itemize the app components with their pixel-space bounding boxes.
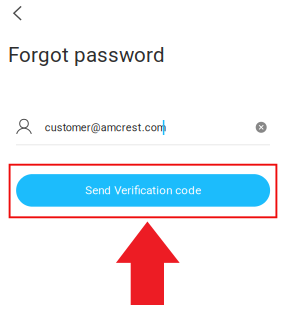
staticText: customer@amcrest.com	[45, 121, 166, 134]
button[interactable]: Clear text	[251, 117, 271, 137]
staticText: Forgot password	[8, 43, 165, 67]
button[interactable]: Back	[0, 0, 36, 28]
button[interactable]: Send Verification code	[16, 174, 270, 207]
staticText: Send Verification code	[85, 184, 201, 197]
button[interactable]: customer@amcrest.com	[16, 111, 254, 145]
